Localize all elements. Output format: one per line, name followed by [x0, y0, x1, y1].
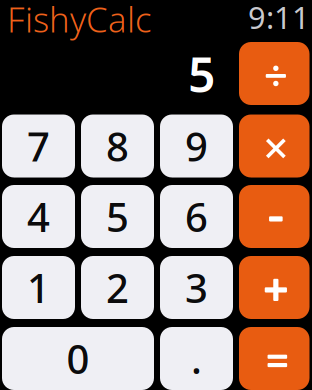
staticText: 3 [185, 261, 208, 314]
staticText: 2 [106, 261, 129, 314]
button[interactable]: Multiply [239, 114, 309, 177]
button[interactable]: 2 [81, 256, 154, 319]
staticText: 0 [66, 332, 89, 385]
button[interactable]: Equals [239, 327, 309, 390]
staticText: 9 [185, 119, 208, 172]
staticText: 9:11 [248, 0, 310, 37]
staticText: 8 [106, 119, 129, 172]
button[interactable]: Minus [239, 185, 309, 248]
button[interactable]: 9 [160, 114, 233, 177]
button[interactable]: 8 [81, 114, 154, 177]
staticText: . [191, 332, 202, 385]
staticText: 4 [27, 190, 50, 243]
button[interactable]: Divide [239, 42, 309, 105]
button[interactable]: 0 [2, 327, 154, 390]
button[interactable]: 4 [2, 185, 75, 248]
button[interactable]: 1 [2, 256, 75, 319]
staticText: 5 [106, 190, 129, 243]
button[interactable]: Plus [239, 256, 309, 319]
button[interactable]: . [160, 327, 233, 390]
button[interactable]: 6 [160, 185, 233, 248]
staticText: FishyCalc [7, 0, 152, 42]
button[interactable]: 5 [81, 185, 154, 248]
staticText: 1 [27, 261, 50, 314]
staticText: 7 [27, 119, 50, 172]
button[interactable]: 3 [160, 256, 233, 319]
button[interactable]: 7 [2, 114, 75, 177]
staticText: 5 [188, 42, 215, 106]
staticText: 6 [185, 190, 208, 243]
